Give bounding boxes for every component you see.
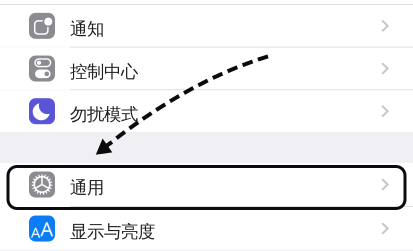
button[interactable]: A (0, 207, 413, 250)
staticText: 通知 (70, 18, 104, 40)
staticText: 通用 (70, 177, 104, 198)
staticText: 控制中心 (70, 61, 138, 82)
button[interactable]: 通知 (0, 5, 413, 47)
staticText: A (40, 215, 53, 242)
button[interactable]: 控制中心 (0, 48, 413, 89)
staticText: A (31, 222, 40, 242)
button[interactable]: 通用 (0, 163, 413, 206)
button[interactable]: 勿扰模式 (0, 90, 413, 132)
staticText: 显示与亮度 (70, 221, 155, 242)
staticText: 勿扰模式 (70, 104, 138, 125)
